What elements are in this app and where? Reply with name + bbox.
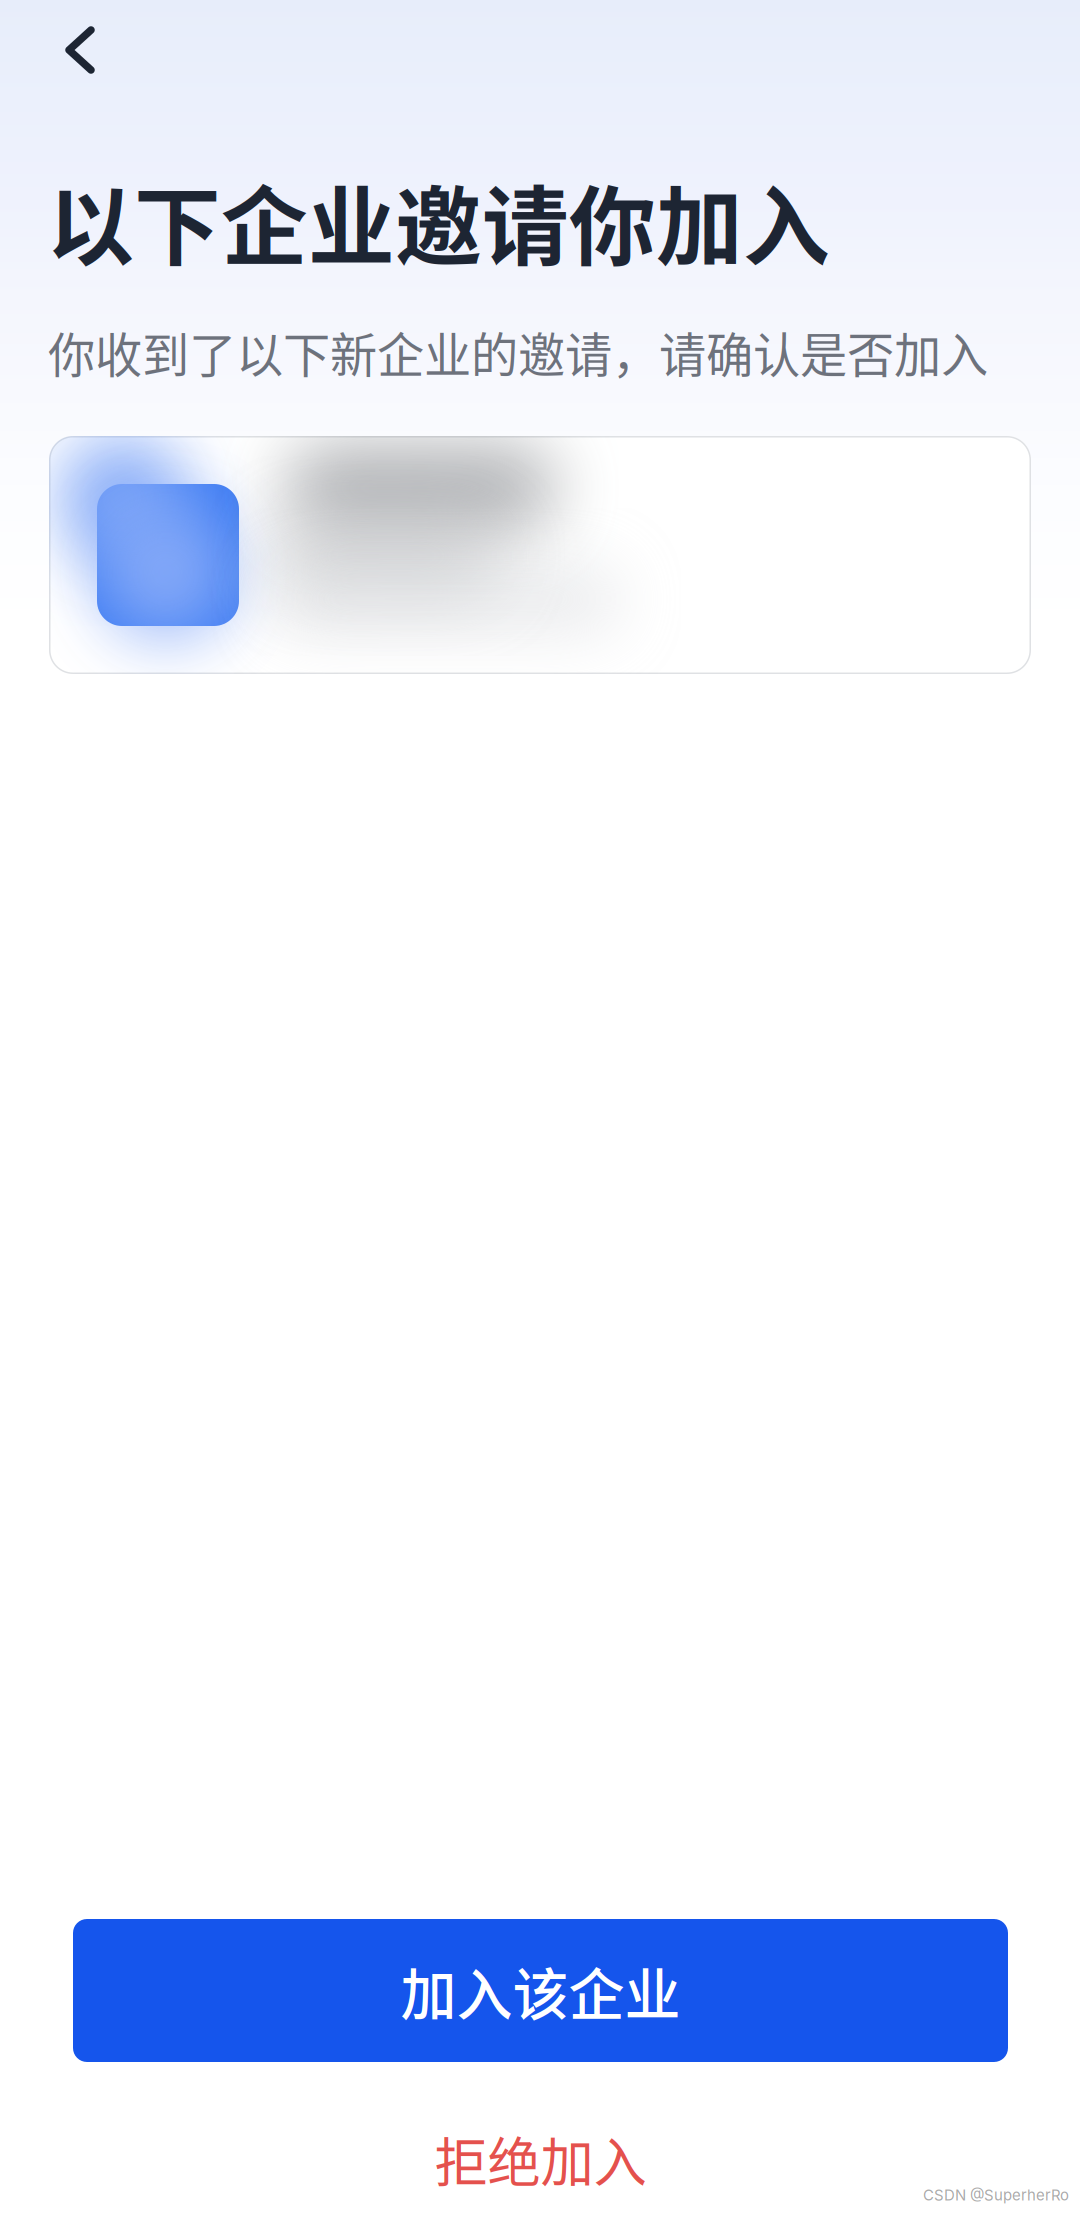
staticText: 以下企业邀请你加入 — [47, 158, 830, 283]
staticText: 你收到了以下新企业的邀请，请确认是否加入 — [48, 318, 988, 386]
button[interactable]: 加入该企业 — [73, 1919, 1008, 2062]
button[interactable]: 拒绝加入 — [73, 2103, 1008, 2215]
staticText: 拒绝加入 — [434, 2120, 646, 2198]
staticText: 加入该企业 — [400, 1950, 680, 2031]
button[interactable]: 返回 — [25, 0, 135, 100]
staticText: CSDN @SuperherRo — [923, 2186, 1069, 2204]
button[interactable]: 邀请你的企业 — [49, 436, 1031, 674]
